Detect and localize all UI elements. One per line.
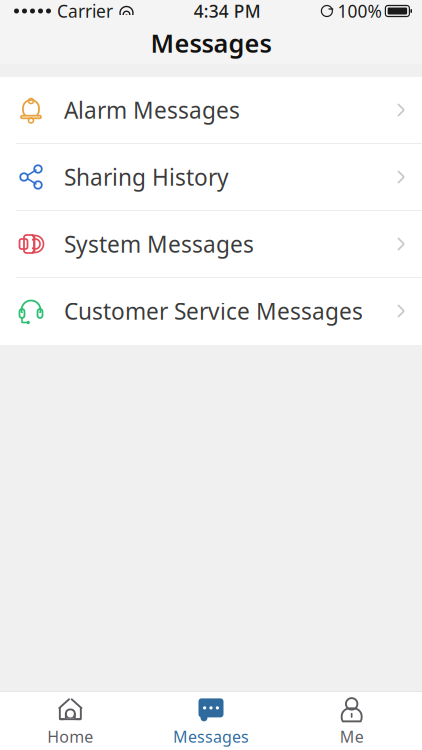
staticText: Home bbox=[47, 726, 93, 747]
staticText: Sharing History bbox=[64, 162, 229, 192]
staticText: 4:34 PM bbox=[194, 0, 261, 22]
button[interactable]: Customer Service Messages bbox=[0, 278, 422, 345]
staticText: Messages bbox=[173, 726, 249, 747]
button[interactable]: Sharing History bbox=[0, 144, 422, 211]
button[interactable]: Alarm Messages bbox=[0, 77, 422, 144]
button[interactable]: Me bbox=[281, 691, 422, 750]
button[interactable]: Home bbox=[0, 691, 141, 750]
staticText: Carrier bbox=[57, 0, 113, 22]
staticText: Customer Service Messages bbox=[64, 296, 363, 326]
staticText: System Messages bbox=[64, 229, 254, 259]
button[interactable]: System Messages bbox=[0, 211, 422, 278]
staticText: 100% bbox=[337, 0, 381, 22]
staticText: Me bbox=[340, 726, 364, 747]
staticText: Alarm Messages bbox=[64, 95, 240, 125]
staticText: Messages bbox=[150, 26, 271, 60]
button[interactable]: Messages bbox=[141, 691, 281, 750]
